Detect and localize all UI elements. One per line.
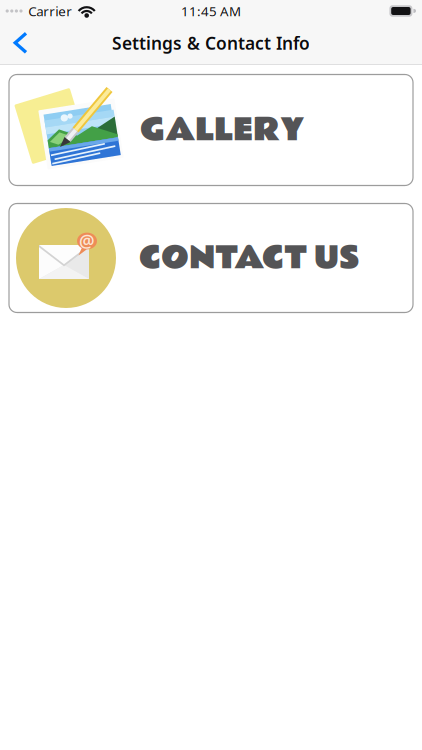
staticText: Carrier bbox=[28, 2, 72, 20]
staticText: @ bbox=[79, 229, 95, 252]
staticText: Settings & Contact Info bbox=[112, 31, 310, 54]
button[interactable]: @ bbox=[9, 203, 413, 312]
staticText: GALLERY bbox=[140, 105, 305, 155]
button[interactable]: Back bbox=[0, 22, 42, 63]
staticText: 11:45 AM bbox=[181, 2, 241, 20]
button[interactable]: GALLERY bbox=[9, 74, 413, 185]
staticText: CONTACT US bbox=[139, 233, 360, 283]
